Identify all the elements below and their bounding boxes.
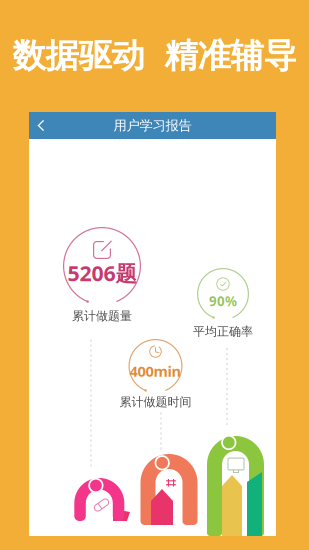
staticText: 400min — [129, 361, 181, 381]
staticText: 数据驱动 精准辅导 — [12, 35, 296, 76]
button[interactable]: Back — [29, 112, 53, 139]
staticText: 累计做题时间 — [119, 395, 191, 409]
staticText: 90% — [209, 292, 237, 310]
staticText: 平均正确率 — [193, 324, 253, 339]
staticText: 累计做题量 — [72, 309, 132, 323]
staticText: 5206题 — [67, 259, 136, 287]
staticText: 用户学习报告 — [113, 117, 191, 134]
